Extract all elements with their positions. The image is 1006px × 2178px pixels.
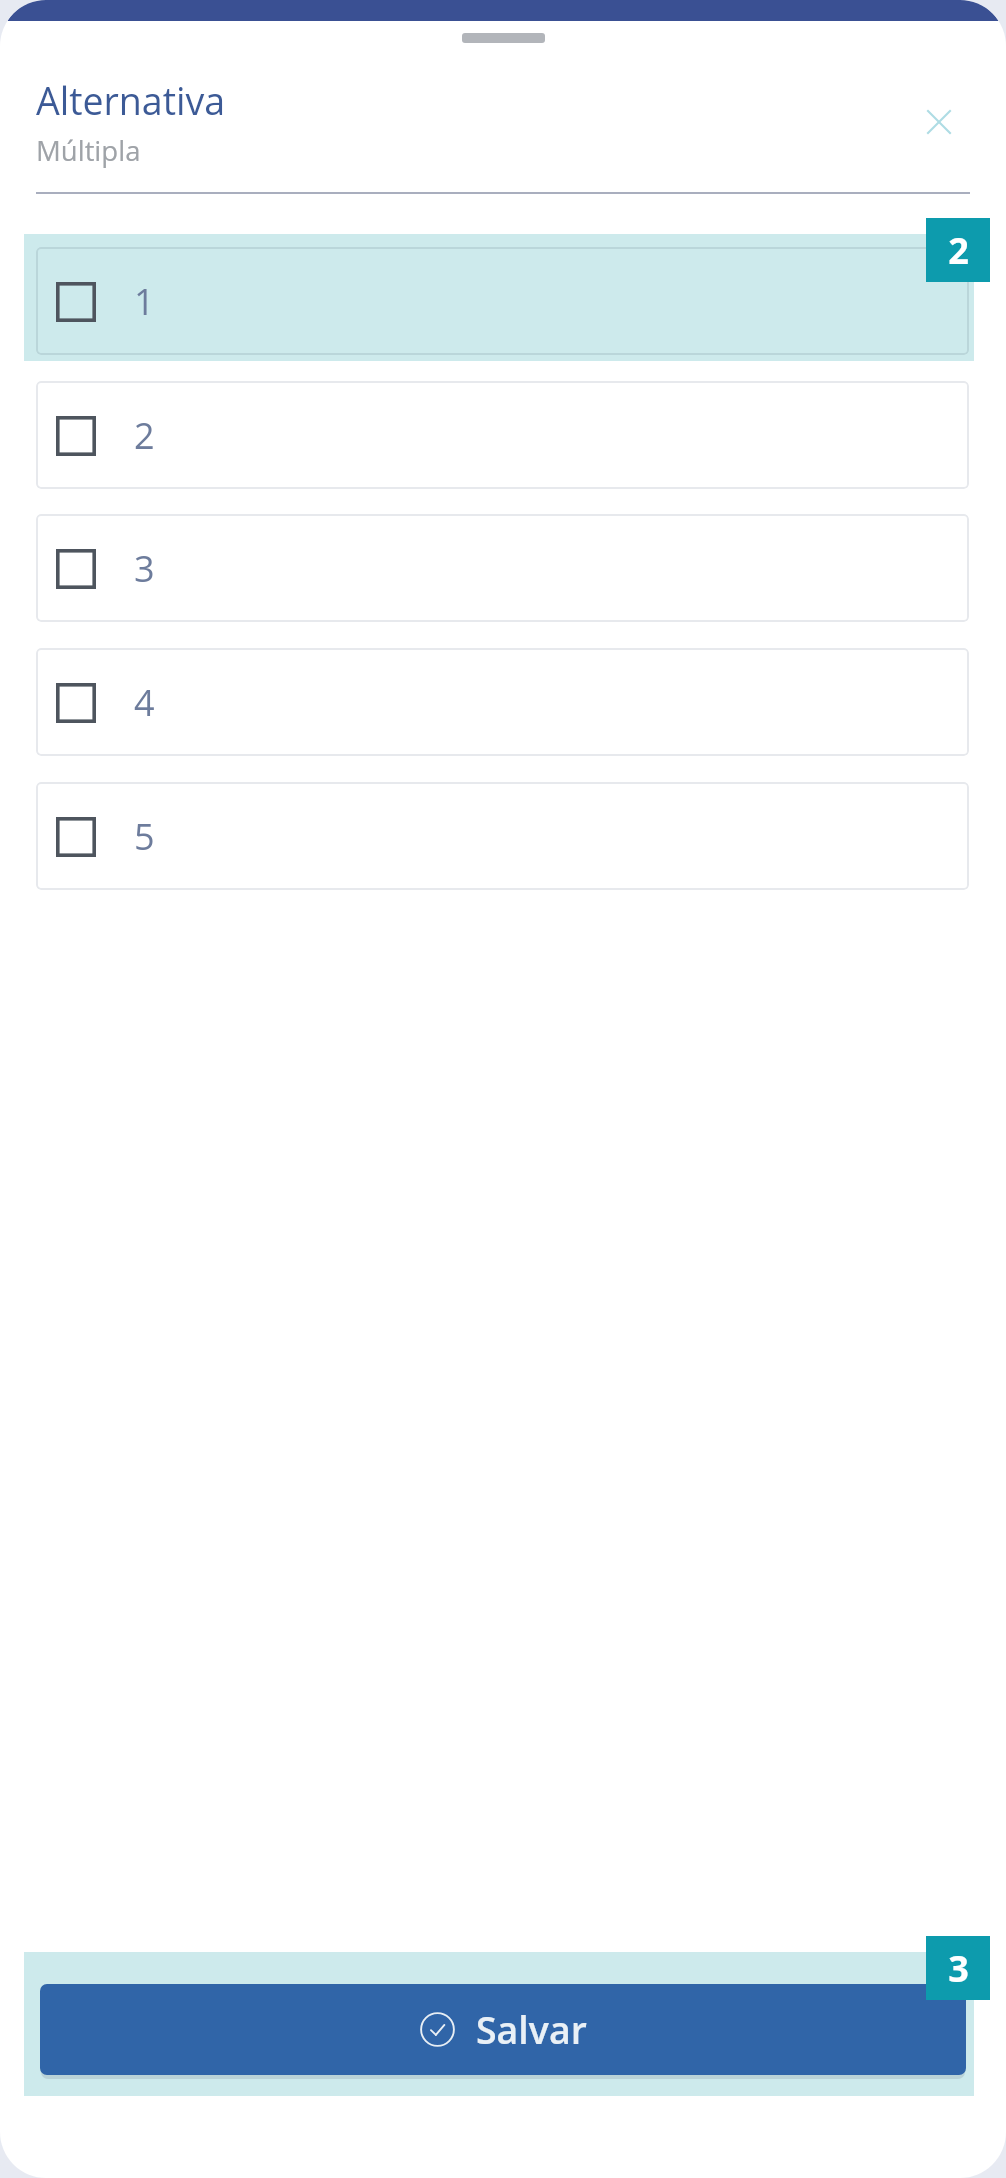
- button[interactable]: 5: [36, 782, 969, 890]
- button[interactable]: 1: [36, 247, 969, 355]
- button[interactable]: Salvar: [40, 1984, 966, 2075]
- staticText: 4: [134, 678, 155, 727]
- button[interactable]: 2: [36, 381, 969, 489]
- staticText: 1: [134, 277, 155, 326]
- staticText: Salvar: [476, 2004, 587, 2055]
- staticText: Múltipla: [36, 132, 141, 169]
- staticText: 3: [948, 1944, 969, 1993]
- staticText: 3: [134, 544, 155, 593]
- button[interactable]: 3: [36, 514, 969, 622]
- staticText: 2: [948, 226, 969, 275]
- staticText: 5: [134, 812, 155, 861]
- button[interactable]: Fechar: [911, 94, 967, 150]
- staticText: 2: [134, 411, 155, 460]
- staticText: Alternativa: [36, 75, 226, 126]
- button[interactable]: 4: [36, 648, 969, 756]
